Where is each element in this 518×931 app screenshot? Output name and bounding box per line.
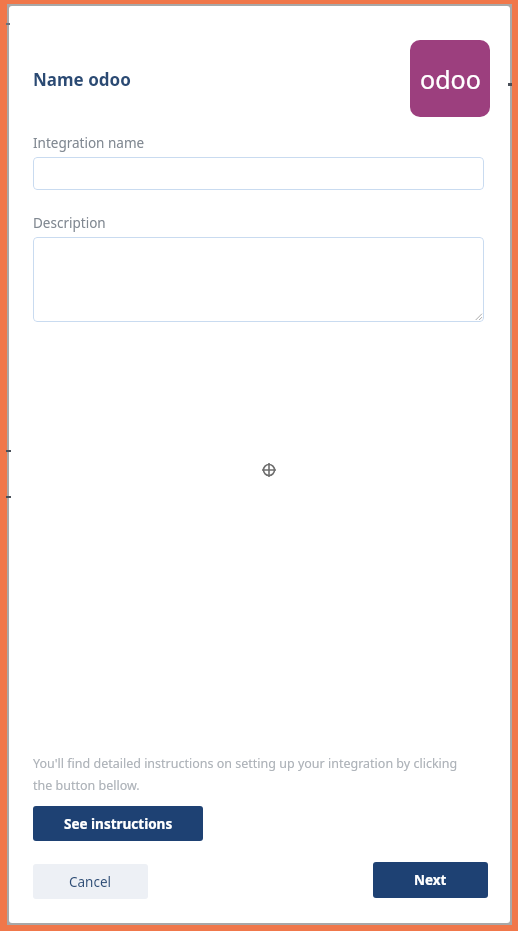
staticText: Cancel [69, 873, 112, 891]
button[interactable]: Integration name input [33, 157, 484, 190]
staticText: the button bellow. [33, 777, 140, 794]
button[interactable]: Cancel [33, 864, 148, 899]
button[interactable]: See instructions [33, 806, 203, 841]
staticText: You'll find detailed instructions on set… [33, 755, 458, 772]
button[interactable]: Next [373, 862, 488, 898]
staticText: odoo [420, 62, 481, 96]
staticText: Description [33, 214, 106, 232]
staticText: Integration name [33, 134, 145, 152]
staticText: Name odoo [33, 68, 131, 91]
button[interactable]: odoo logo [410, 40, 490, 117]
staticText: Next [414, 871, 447, 889]
button[interactable]: Description input [33, 237, 484, 322]
staticText: See instructions [64, 815, 173, 833]
